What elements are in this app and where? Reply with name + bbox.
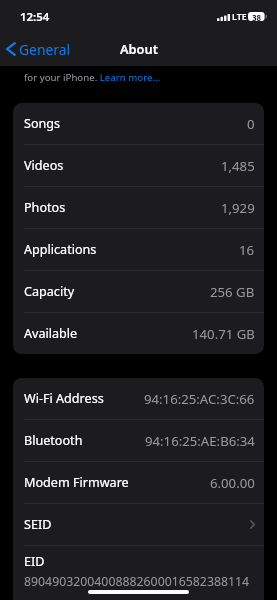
button[interactable]: EID [13,546,264,600]
staticText: 140.71 GB [192,325,255,343]
staticText: About [120,40,158,57]
staticText: 1,929 [221,199,255,217]
staticText: 1,485 [221,157,255,175]
staticText: 16 [239,241,255,259]
button[interactable]: Available [13,313,264,354]
staticText: 89049032004008882600016582388114 [24,573,250,590]
staticText: SEID [24,516,52,533]
staticText: 0 [247,115,255,133]
staticText: Bluetooth [24,432,83,449]
staticText: Photos [24,199,66,216]
staticText: LTE [232,11,247,23]
staticText: General [19,40,71,59]
button[interactable]: Back to General [0,35,77,62]
button[interactable]: Wi-Fi Address [13,378,264,420]
button[interactable]: Modem Firmware [13,462,264,504]
staticText: 6.00.00 [210,474,255,492]
staticText: Songs [24,115,61,132]
staticText: Modem Firmware [24,474,129,491]
button[interactable]: Videos [13,145,264,187]
button[interactable]: for your iPhone. Learn more... [24,71,161,84]
button[interactable]: Songs [13,103,264,145]
staticText: Applications [24,241,97,258]
button[interactable]: SEID [13,504,264,546]
staticText: Capacity [24,283,75,300]
button[interactable]: Capacity [13,271,264,313]
staticText: 38 [252,12,262,21]
staticText: Wi-Fi Address [24,390,104,407]
staticText: 94:16:25:AC:3C:66 [144,390,255,408]
staticText: 94:16:25:AE:B6:34 [145,432,255,450]
button[interactable]: Bluetooth [13,420,264,462]
staticText: 256 GB [210,283,255,301]
button[interactable]: Photos [13,187,264,229]
staticText: 12:54 [20,9,50,25]
button[interactable]: Applications [13,229,264,271]
staticText: Videos [24,157,64,174]
staticText: EID [24,553,45,570]
staticText: Available [24,325,78,342]
